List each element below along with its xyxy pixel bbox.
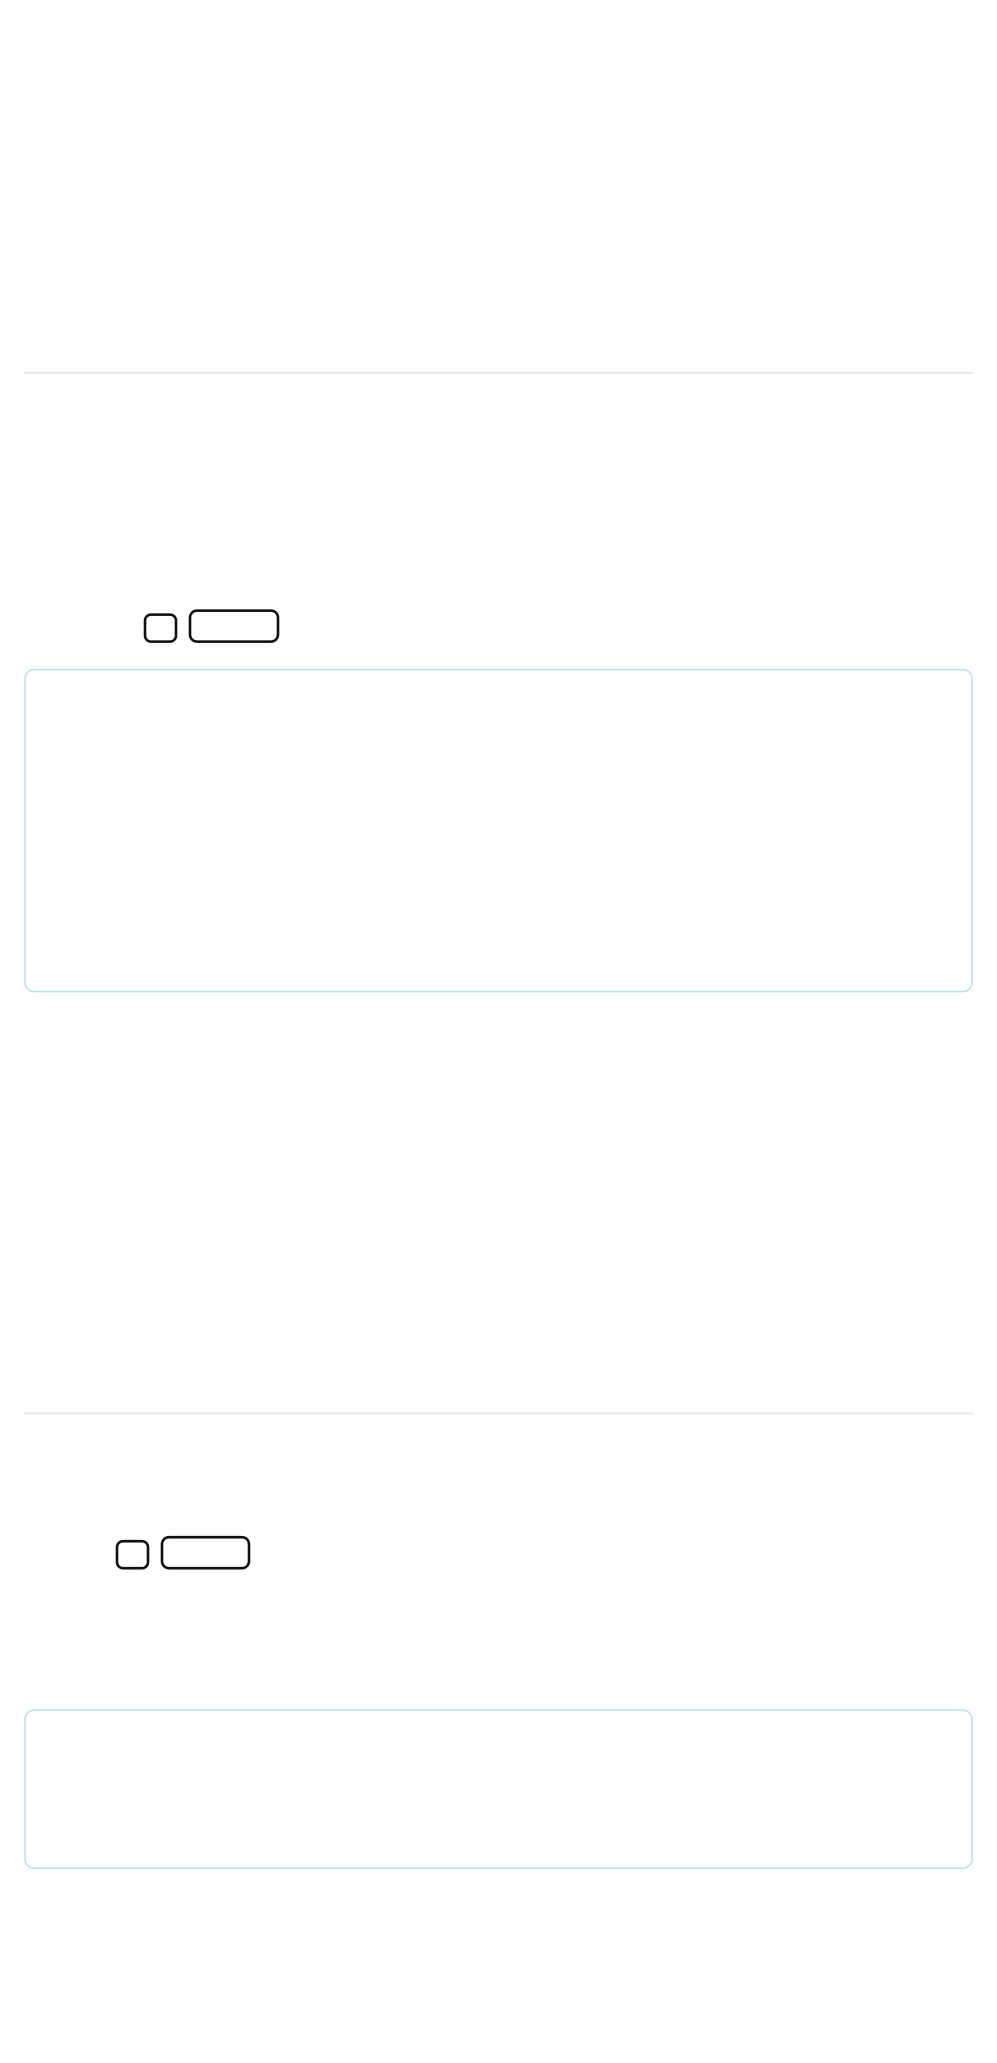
button[interactable]: Sender name (190, 611, 278, 642)
button[interactable]: Avatar (145, 615, 176, 642)
button[interactable]: Avatar (117, 1541, 148, 1568)
button[interactable]: Sender name (162, 1537, 249, 1568)
button[interactable]: Message card (0, 1710, 997, 1868)
button[interactable]: Message card (0, 670, 997, 992)
